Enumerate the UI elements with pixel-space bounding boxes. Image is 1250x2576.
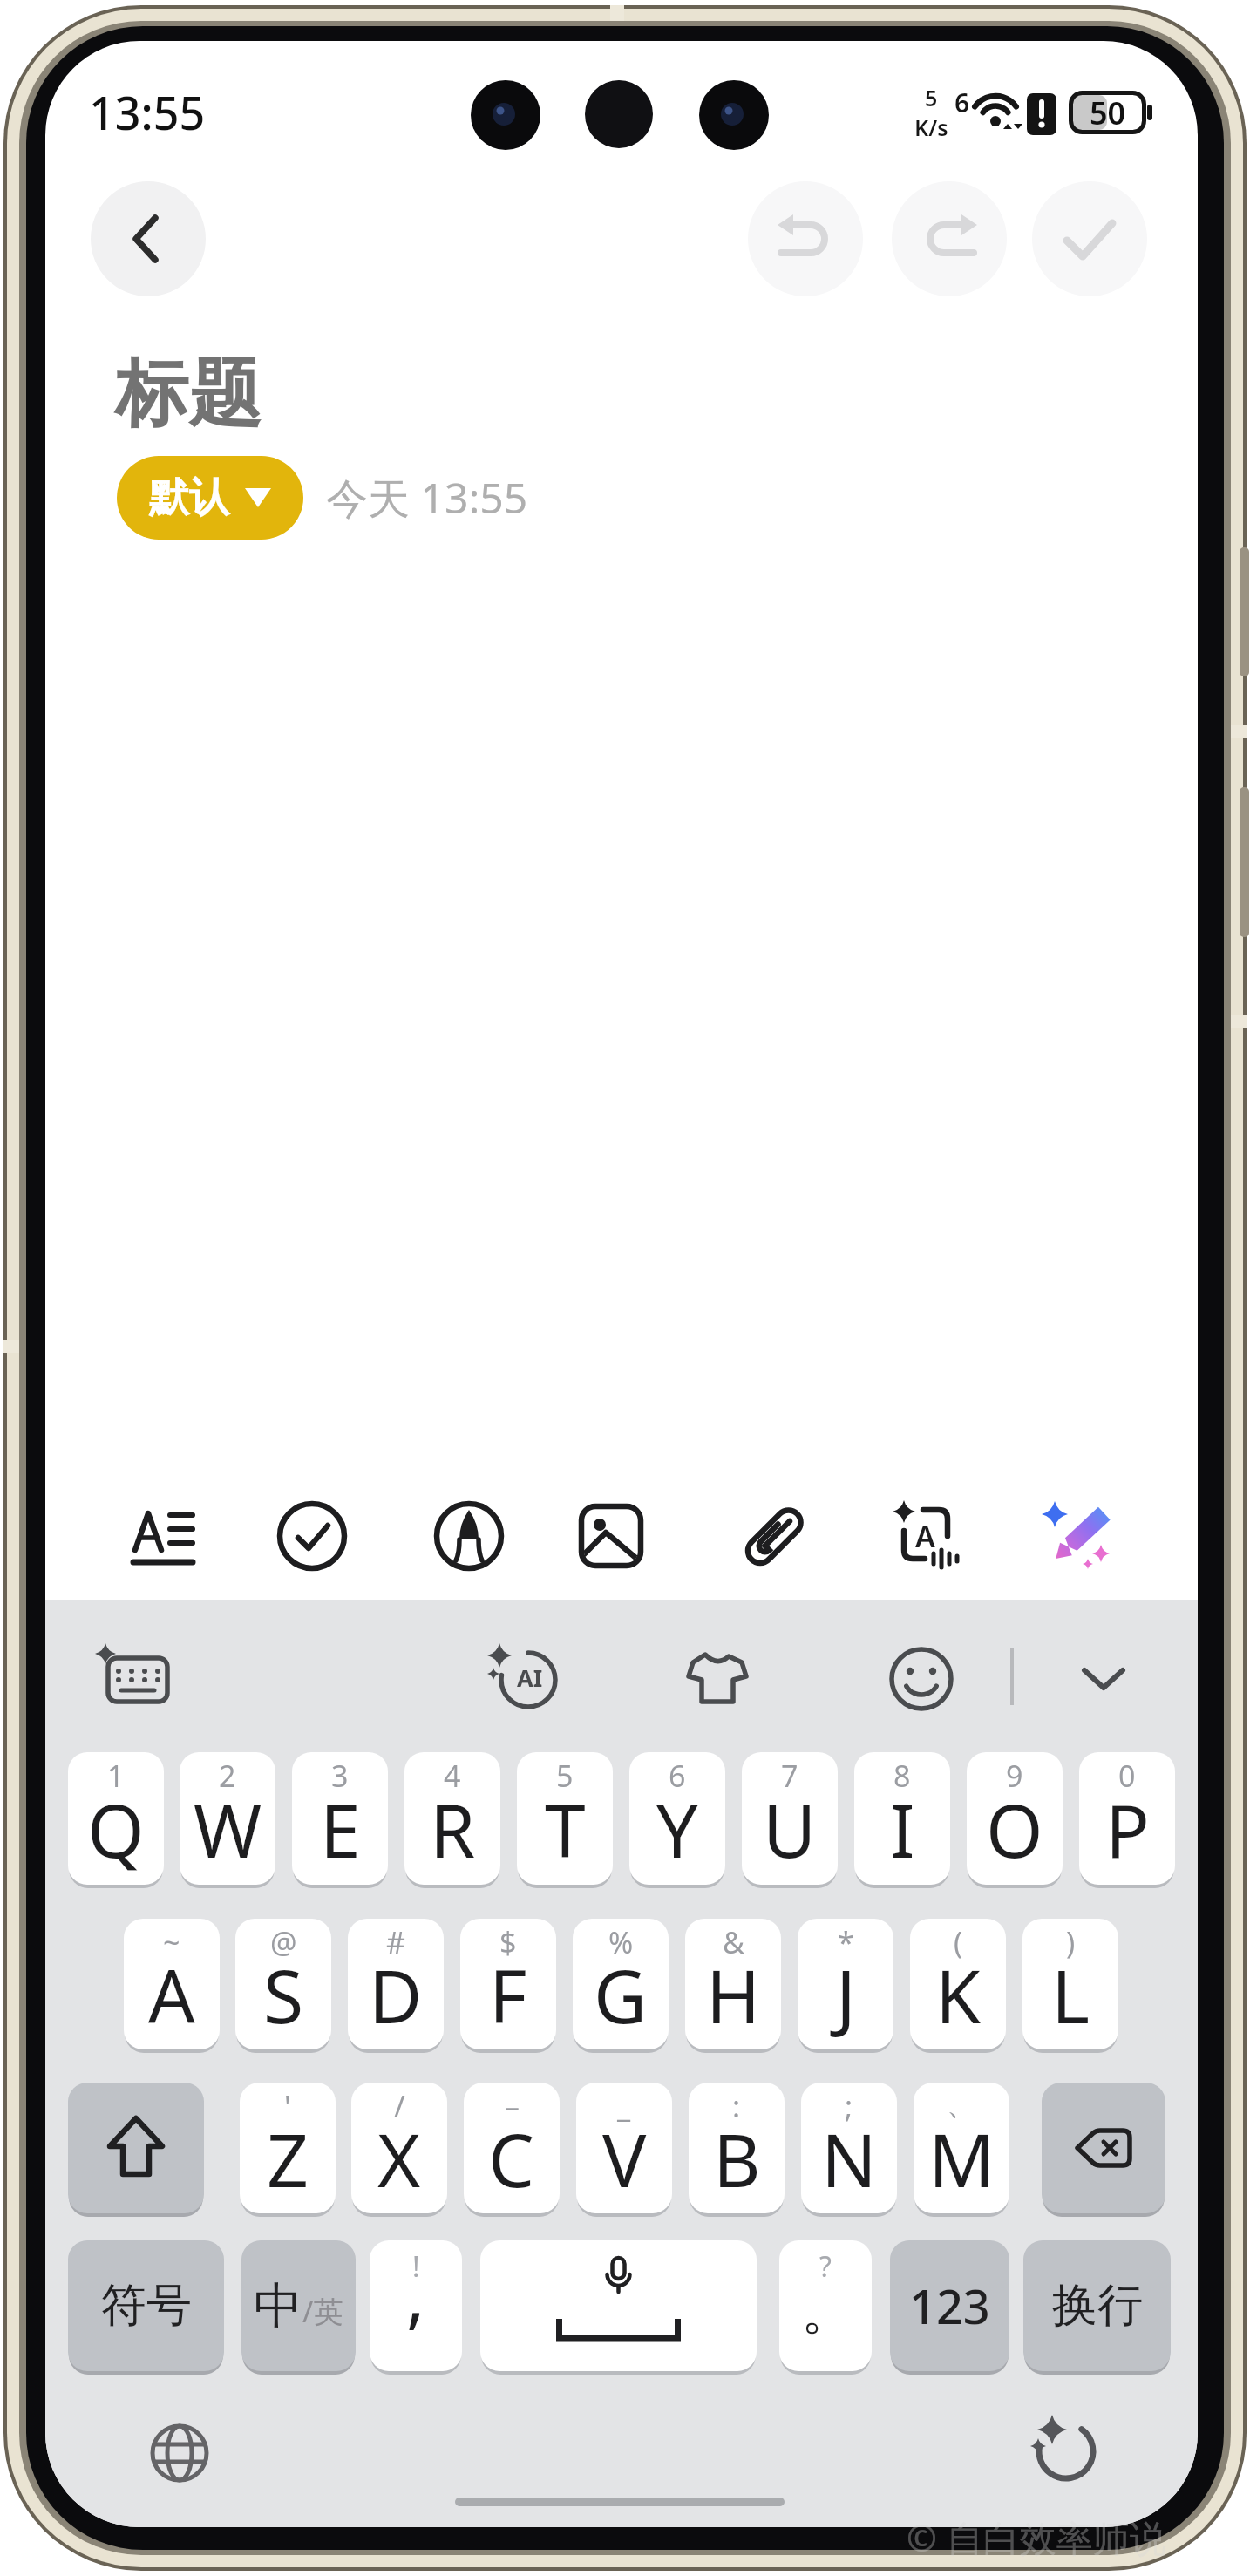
- staticText: M: [928, 2109, 995, 2208]
- button[interactable]: [432, 1499, 506, 1573]
- staticText: ;: [845, 2086, 853, 2126]
- button[interactable]: [892, 181, 1007, 296]
- button[interactable]: [1032, 181, 1147, 296]
- staticText: F: [489, 1945, 527, 2044]
- staticText: L: [1051, 1945, 1090, 2044]
- button[interactable]: @: [235, 1919, 331, 2049]
- staticText: S: [263, 1945, 304, 2044]
- button[interactable]: [1022, 2408, 1110, 2495]
- staticText: 换行: [1052, 2277, 1143, 2335]
- button[interactable]: ': [240, 2083, 336, 2213]
- button[interactable]: [68, 2083, 204, 2213]
- button[interactable]: ?: [779, 2240, 872, 2371]
- staticText: X: [377, 2109, 421, 2208]
- button[interactable]: 中/英: [241, 2240, 356, 2371]
- button[interactable]: %: [573, 1919, 669, 2049]
- button[interactable]: (: [910, 1919, 1006, 2049]
- staticText: R: [430, 1779, 476, 1879]
- button[interactable]: 1: [68, 1752, 164, 1885]
- staticText: 1: [107, 1756, 125, 1796]
- staticText: 。: [801, 2278, 853, 2344]
- staticText: #: [386, 1922, 405, 1962]
- button[interactable]: [94, 1641, 173, 1714]
- staticText: N: [821, 2109, 877, 2208]
- staticText: I: [890, 1779, 915, 1879]
- button[interactable]: 123: [890, 2240, 1009, 2371]
- button[interactable]: [1042, 1499, 1115, 1573]
- staticText: 13:55: [89, 81, 206, 137]
- button[interactable]: *: [798, 1919, 893, 2049]
- staticText: O: [986, 1779, 1043, 1879]
- staticText: E: [320, 1779, 361, 1879]
- staticText: $: [499, 1922, 517, 1962]
- button[interactable]: [480, 2240, 757, 2371]
- button[interactable]: [1064, 1641, 1143, 1714]
- button[interactable]: ): [1022, 1919, 1118, 2049]
- button[interactable]: [678, 1641, 757, 1714]
- button[interactable]: [748, 181, 863, 296]
- staticText: (: [954, 1922, 963, 1962]
- staticText: ): [1066, 1922, 1076, 1962]
- button[interactable]: A: [890, 1499, 963, 1573]
- staticText: U: [763, 1779, 817, 1879]
- button[interactable]: _: [576, 2083, 672, 2213]
- button[interactable]: 6: [629, 1752, 725, 1885]
- staticText: J: [836, 1945, 856, 2044]
- staticText: –: [505, 2086, 520, 2126]
- staticText: !: [412, 2247, 420, 2286]
- staticText: _: [617, 2086, 631, 2126]
- button[interactable]: 9: [967, 1752, 1063, 1885]
- button[interactable]: 0: [1079, 1752, 1175, 1885]
- button[interactable]: 4: [404, 1752, 500, 1885]
- staticText: %: [608, 1922, 634, 1962]
- button[interactable]: 换行: [1023, 2240, 1171, 2371]
- staticText: 6: [954, 85, 970, 120]
- button[interactable]: [738, 1499, 812, 1573]
- staticText: :: [732, 2086, 741, 2126]
- button[interactable]: /: [351, 2083, 447, 2213]
- staticText: H: [706, 1945, 761, 2044]
- button[interactable]: [136, 2409, 223, 2497]
- staticText: ': [284, 2086, 291, 2126]
- button[interactable]: [882, 1641, 961, 1714]
- staticText: &: [723, 1922, 744, 1962]
- staticText: G: [594, 1945, 648, 2044]
- staticText: D: [369, 1945, 423, 2044]
- button[interactable]: [126, 1499, 200, 1573]
- button[interactable]: –: [464, 2083, 560, 2213]
- button[interactable]: 8: [854, 1752, 950, 1885]
- button[interactable]: #: [348, 1919, 444, 2049]
- button[interactable]: 5: [517, 1752, 613, 1885]
- staticText: © 自白效率师说: [907, 2512, 1166, 2562]
- button[interactable]: 、: [914, 2083, 1009, 2213]
- button[interactable]: 7: [742, 1752, 838, 1885]
- button[interactable]: ~: [124, 1919, 220, 2049]
- staticText: 符号: [101, 2277, 192, 2335]
- button[interactable]: :: [689, 2083, 785, 2213]
- button[interactable]: &: [685, 1919, 781, 2049]
- button[interactable]: [574, 1499, 648, 1573]
- staticText: K: [935, 1945, 981, 2044]
- staticText: 今天 13:55: [326, 469, 528, 527]
- button[interactable]: [275, 1499, 349, 1573]
- button[interactable]: 3: [292, 1752, 388, 1885]
- staticText: W: [194, 1779, 262, 1879]
- staticText: 标题: [115, 348, 262, 440]
- button[interactable]: $: [460, 1919, 556, 2049]
- button[interactable]: AI: [488, 1641, 567, 1714]
- staticText: 5: [925, 83, 938, 112]
- button[interactable]: !: [370, 2240, 462, 2371]
- staticText: 7: [781, 1756, 798, 1796]
- staticText: 50: [1090, 92, 1126, 134]
- button[interactable]: 2: [180, 1752, 275, 1885]
- staticText: K/s: [914, 112, 948, 137]
- button[interactable]: [91, 181, 206, 296]
- button[interactable]: [1042, 2083, 1165, 2213]
- button[interactable]: 默认: [117, 456, 303, 540]
- staticText: /: [394, 2086, 405, 2126]
- button[interactable]: ;: [801, 2083, 897, 2213]
- button[interactable]: 符号: [68, 2240, 224, 2371]
- staticText: 3: [331, 1756, 349, 1796]
- staticText: 2: [219, 1756, 236, 1796]
- staticText: Q: [87, 1779, 145, 1879]
